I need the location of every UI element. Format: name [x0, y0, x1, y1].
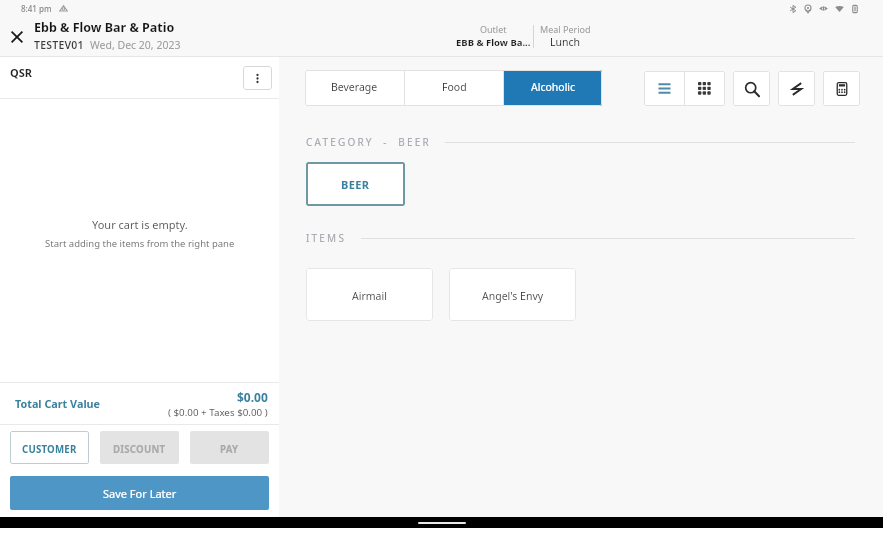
staticText: Beverage [331, 80, 378, 94]
staticText: TESTEV01 [34, 38, 84, 52]
staticText: $0.00 [237, 389, 268, 405]
button[interactable]: List view [644, 71, 684, 106]
button[interactable]: Calculator [823, 71, 860, 106]
staticText: Angel's Envy [482, 289, 544, 303]
staticText: QSR [10, 65, 32, 80]
staticText: Your cart is empty. [92, 217, 188, 232]
button[interactable]: Alcoholic [504, 70, 602, 106]
staticText: Outlet [480, 23, 507, 35]
staticText: Alcoholic [531, 80, 576, 94]
staticText: EBB & Flow Ba... [456, 36, 531, 49]
staticText: 8:41 pm [21, 3, 52, 14]
button[interactable]: CUSTOMER [10, 431, 89, 464]
button[interactable]: Search [733, 71, 770, 106]
staticText: DISCOUNT [113, 443, 166, 456]
staticText: Airmail [352, 289, 387, 303]
button[interactable]: Beverage [305, 70, 404, 106]
staticText: ( $0.00 + Taxes $0.00 ) [168, 406, 268, 419]
staticText: Save For Later [103, 486, 177, 501]
staticText: ITEMS [306, 231, 347, 245]
button[interactable]: More options [243, 66, 272, 90]
button[interactable]: DISCOUNT [100, 431, 179, 464]
button[interactable]: Airmail [306, 268, 433, 321]
staticText: Ebb & Flow Bar & Patio [34, 19, 175, 36]
staticText: Meal Period [540, 23, 591, 35]
button[interactable]: PAY [190, 431, 269, 464]
staticText: Start adding the items from the right pa… [45, 237, 235, 250]
button[interactable]: Angel's Envy [449, 268, 576, 321]
staticText: Food [442, 80, 467, 94]
staticText: Lunch [550, 35, 581, 49]
staticText: PAY [220, 443, 239, 456]
button[interactable]: Food [405, 70, 503, 106]
staticText: CUSTOMER [22, 443, 77, 456]
button[interactable]: BEER [306, 162, 405, 206]
staticText: CATEGORY - BEER [306, 135, 431, 149]
staticText: Wed, Dec 20, 2023 [90, 38, 181, 52]
staticText: BEER [341, 177, 370, 192]
button[interactable]: Grid view [685, 71, 725, 106]
button[interactable]: Quick actions [778, 71, 815, 106]
button[interactable]: Save For Later [10, 476, 269, 510]
staticText: Total Cart Value [15, 396, 101, 411]
button[interactable]: Close [0, 17, 34, 56]
